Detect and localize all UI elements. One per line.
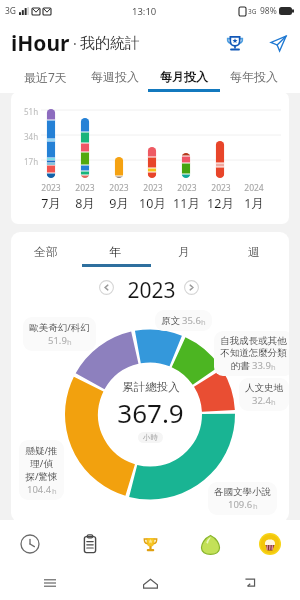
staticText: 17h <box>24 156 39 167</box>
staticText: 1月 <box>244 195 264 212</box>
staticText: h <box>271 397 276 407</box>
staticText: 2023 <box>41 182 61 194</box>
button[interactable]: Records <box>60 522 120 566</box>
button[interactable]: Previous year <box>99 280 114 295</box>
staticText: 的書 <box>231 360 250 372</box>
button[interactable]: Timer <box>0 522 60 566</box>
staticText: 2023 <box>143 182 163 194</box>
button[interactable]: 每月投入 <box>149 62 219 93</box>
button[interactable]: Home <box>100 566 200 600</box>
staticText: 每年投入 <box>230 69 278 84</box>
staticText: 累計總投入 <box>122 380 180 394</box>
staticText: 11月 <box>173 195 200 212</box>
staticText: 各國文學小說 <box>214 486 271 498</box>
staticText: 理/偵 <box>30 457 53 470</box>
staticText: 7月 <box>41 195 61 212</box>
staticText: 探/驚悚 <box>25 470 58 483</box>
staticText: 3G <box>248 7 257 16</box>
button[interactable]: 全部 <box>11 236 80 266</box>
staticText: 歐美奇幻/科幻 <box>29 321 90 334</box>
button[interactable]: 每週投入 <box>80 62 149 93</box>
staticText: 最近7天 <box>24 69 67 85</box>
staticText: 33.9 <box>252 359 271 372</box>
staticText: 自我成長或其他 <box>220 335 287 347</box>
staticText: 人文史地 <box>245 382 283 394</box>
staticText: 8月 <box>75 195 95 212</box>
button[interactable]: 每年投入 <box>219 62 289 93</box>
staticText: 原文 <box>161 315 180 327</box>
button[interactable]: 月 <box>149 236 219 266</box>
staticText: 109.6 <box>228 498 253 511</box>
staticText: 不知道怎麼分類 <box>220 347 287 359</box>
staticText: 全部 <box>34 244 58 259</box>
staticText: 98% <box>260 5 277 17</box>
staticText: h <box>271 362 276 372</box>
staticText: 小時 <box>143 433 158 442</box>
button[interactable]: Back <box>200 566 300 600</box>
staticText: h <box>52 486 57 496</box>
staticText: 35.6 <box>182 314 201 327</box>
staticText: 12月 <box>207 195 234 212</box>
button[interactable]: Share <box>265 30 291 56</box>
staticText: · <box>73 34 77 53</box>
staticText: h <box>201 317 206 327</box>
staticText: 10月 <box>139 195 166 212</box>
button[interactable]: Statistics <box>120 522 180 566</box>
staticText: 每月投入 <box>160 69 208 84</box>
staticText: 32.4 <box>252 394 271 407</box>
staticText: 3G <box>5 5 17 17</box>
staticText: 月 <box>178 244 190 259</box>
button[interactable]: 週 <box>219 236 289 266</box>
button[interactable]: Next year <box>184 280 199 295</box>
staticText: 年 <box>109 244 121 259</box>
staticText: h <box>67 337 72 347</box>
staticText: 2023 <box>109 182 129 194</box>
button[interactable]: Achievements <box>222 30 248 56</box>
staticText: iHour <box>11 29 70 58</box>
staticText: h <box>253 501 258 511</box>
staticText: 2023 <box>177 182 197 194</box>
staticText: 每週投入 <box>91 69 139 84</box>
staticText: 2023 <box>127 276 176 305</box>
staticText: 104.4 <box>27 483 52 496</box>
staticText: 34h <box>24 131 39 142</box>
staticText: 51.9 <box>48 334 67 347</box>
button[interactable]: Shop <box>240 522 300 566</box>
staticText: 我的統計 <box>80 34 140 53</box>
button[interactable]: 年 <box>80 236 149 266</box>
staticText: 懸疑/推 <box>25 444 58 457</box>
button[interactable]: Recent apps <box>0 566 100 600</box>
button[interactable]: Pet egg <box>180 522 240 566</box>
staticText: 51h <box>24 106 39 117</box>
button[interactable]: 最近7天 <box>11 62 80 93</box>
staticText: 週 <box>248 244 260 259</box>
staticText: 2023 <box>211 182 231 194</box>
staticText: 367.9 <box>117 395 184 430</box>
staticText: 2023 <box>75 182 95 194</box>
staticText: 13:10 <box>132 5 157 18</box>
staticText: 2024 <box>244 182 264 194</box>
staticText: 9月 <box>109 195 129 212</box>
